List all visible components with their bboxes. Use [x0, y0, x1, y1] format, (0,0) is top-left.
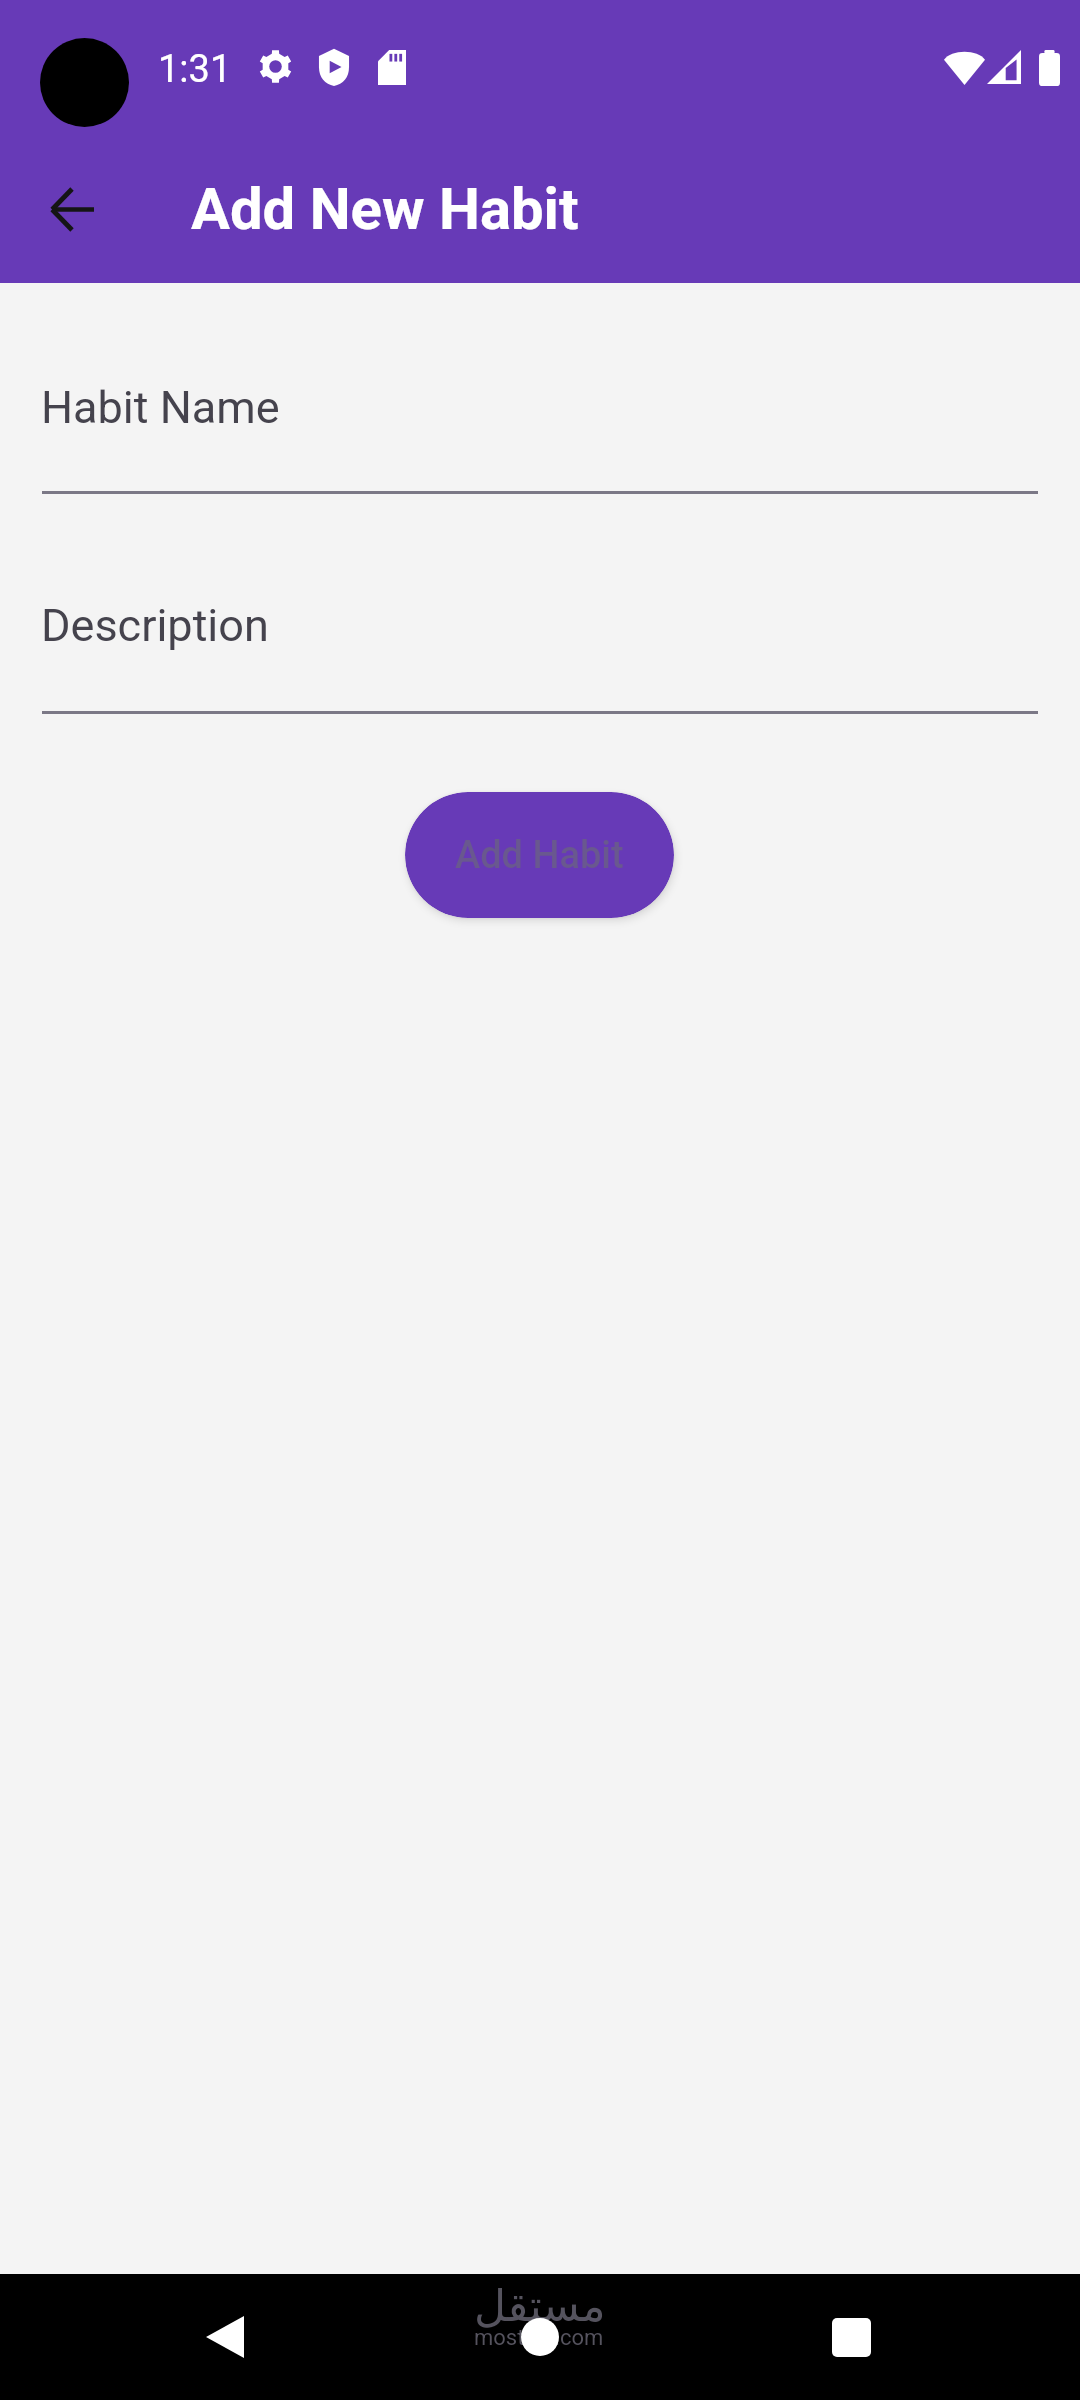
button[interactable]: Recent apps: [812, 2298, 890, 2376]
button[interactable]: Home: [501, 2298, 579, 2376]
button[interactable]: Add Habit: [405, 792, 674, 918]
staticText: mostaql.com: [474, 2325, 604, 2351]
staticText: Add Habit: [455, 833, 624, 878]
staticText: 1:31: [158, 47, 232, 92]
staticText: Description: [41, 599, 269, 652]
staticText: مستقل: [474, 2280, 606, 2331]
button[interactable]: Navigate back: [24, 161, 120, 257]
staticText: Add New Habit: [191, 175, 579, 243]
staticText: Habit Name: [41, 381, 280, 434]
button[interactable]: Back: [186, 2298, 264, 2376]
